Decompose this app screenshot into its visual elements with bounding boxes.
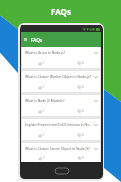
staticText: Explain Process.nextTick() function in N… <box>25 122 93 127</box>
button[interactable]: What is Cluster Server Object in Node.JS… <box>22 143 100 162</box>
staticText: 1 <box>43 109 45 113</box>
staticText: 0 <box>82 109 84 113</box>
button[interactable]: Dislike <box>61 106 100 116</box>
button[interactable]: Dislike <box>61 130 100 140</box>
staticText: 0 <box>82 85 84 89</box>
staticText: 1 <box>43 61 45 65</box>
button[interactable]: What is Node JS Module? <box>22 95 100 116</box>
button[interactable]: Expand <box>93 146 98 151</box>
staticText: 1 <box>43 133 45 137</box>
staticText: 0 <box>82 133 84 137</box>
button[interactable]: Dislike <box>61 58 100 68</box>
staticText: What is Grunt in Node.js? <box>25 50 93 55</box>
button[interactable]: Menu <box>22 36 29 43</box>
button[interactable]: Like <box>22 82 61 92</box>
button[interactable]: Like <box>22 130 61 140</box>
staticText: 0 <box>82 61 84 65</box>
staticText: What is Cluster Worker Object in Node.js… <box>25 74 93 79</box>
staticText: FAQs <box>51 6 71 17</box>
button[interactable]: Expand <box>93 50 98 55</box>
button[interactable]: Like <box>22 58 61 68</box>
staticText: 0 <box>82 156 84 160</box>
button[interactable]: Like <box>22 106 61 116</box>
button[interactable]: Expand <box>93 98 98 103</box>
button[interactable]: Expand <box>93 122 98 127</box>
staticText: What is Cluster Server Object in Node.JS… <box>25 146 93 151</box>
button[interactable]: Explain Process.nextTick() function in N… <box>22 119 100 140</box>
button[interactable]: Like <box>22 154 61 162</box>
button[interactable]: Expand <box>93 74 98 79</box>
button[interactable]: Dislike <box>61 154 100 162</box>
button[interactable]: What is Cluster Worker Object in Node.js… <box>22 71 100 92</box>
staticText: 1 <box>43 85 45 89</box>
button[interactable]: Dislike <box>61 82 100 92</box>
staticText: FAQs <box>31 37 43 43</box>
staticText: What is Node JS Module? <box>25 98 93 103</box>
staticText: 1 <box>43 156 45 160</box>
button[interactable]: What is Grunt in Node.js? <box>22 47 100 68</box>
